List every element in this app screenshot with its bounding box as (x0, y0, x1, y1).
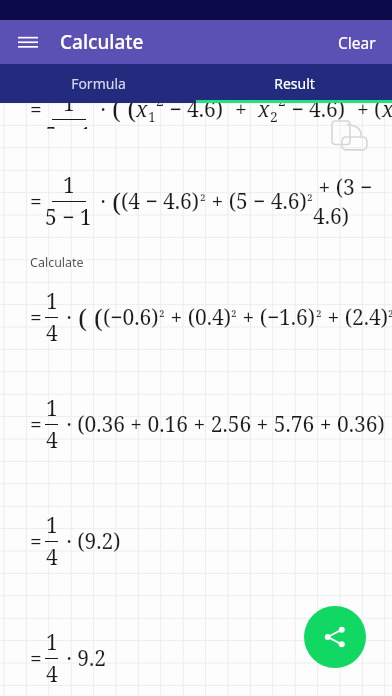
staticText: ² (231, 308, 237, 327)
staticText: ( ( (112, 103, 136, 126)
staticText: x (258, 103, 270, 124)
staticText: 1 (46, 394, 58, 423)
staticText: · (95, 187, 112, 216)
staticText: + (3 − 4.6) (313, 173, 392, 231)
button[interactable]: Clear (322, 24, 392, 61)
staticText: 1 (63, 171, 75, 200)
staticText: · (9.2) (61, 527, 121, 556)
staticText: = (30, 103, 42, 124)
staticText: 1 (63, 103, 75, 118)
staticText: · (61, 303, 78, 332)
button[interactable]: Formula (0, 64, 196, 103)
staticText: (4 − 4.6) (121, 187, 200, 216)
staticText: = (30, 303, 42, 332)
staticText: x (382, 103, 392, 124)
staticText: 1 (46, 287, 58, 316)
staticText: Result (274, 74, 315, 93)
staticText: + ( (346, 103, 382, 124)
staticText: ² (316, 308, 322, 327)
button[interactable]: Copy to clipboard (330, 121, 370, 159)
staticText: Calculate (60, 29, 144, 55)
button[interactable]: Result (196, 64, 392, 103)
staticText: Formula (71, 74, 126, 93)
staticText: = (30, 410, 42, 439)
staticText: 1 (46, 511, 58, 540)
staticText: 2 (270, 107, 278, 126)
staticText: 4 (46, 426, 58, 455)
staticText: + (−1.6) (237, 303, 316, 332)
staticText: ² (307, 192, 313, 211)
staticText: (−0.6) (103, 303, 159, 332)
staticText: 4 (46, 319, 58, 348)
staticText: 4 (46, 660, 58, 689)
staticText: 5 − 1 (45, 203, 92, 232)
staticText: Calculate (30, 254, 84, 271)
staticText: ² (388, 308, 392, 327)
staticText: · (0.36 + 0.16 + 2.56 + 5.76 + 0.36) (61, 410, 385, 439)
button[interactable]: Share (304, 606, 366, 668)
staticText: + (0.4) (165, 303, 231, 332)
staticText: 4 (46, 543, 58, 572)
staticText: − 4.6) (164, 103, 224, 124)
staticText: = (30, 644, 42, 673)
staticText: − 4.6) (286, 103, 346, 124)
staticText: ² (200, 192, 206, 211)
staticText: · (95, 103, 112, 124)
staticText: = (30, 187, 42, 216)
staticText: + (2.4) (322, 303, 388, 332)
staticText: + (224, 103, 258, 124)
staticText: ( (112, 184, 121, 219)
staticText: Clear (338, 32, 376, 53)
staticText: ² (159, 308, 165, 327)
staticText: = (30, 527, 42, 556)
staticText: 5 − 1 (45, 121, 92, 129)
staticText: · 9.2 (61, 644, 106, 673)
staticText: 2 (278, 103, 286, 110)
staticText: x (136, 103, 148, 124)
staticText: 2 (156, 103, 164, 110)
staticText: 1 (46, 628, 58, 657)
staticText: 1 (148, 107, 156, 126)
staticText: + (5 − 4.6) (206, 187, 307, 216)
button[interactable]: Open navigation menu (16, 30, 40, 54)
staticText: ( ( (78, 300, 103, 335)
